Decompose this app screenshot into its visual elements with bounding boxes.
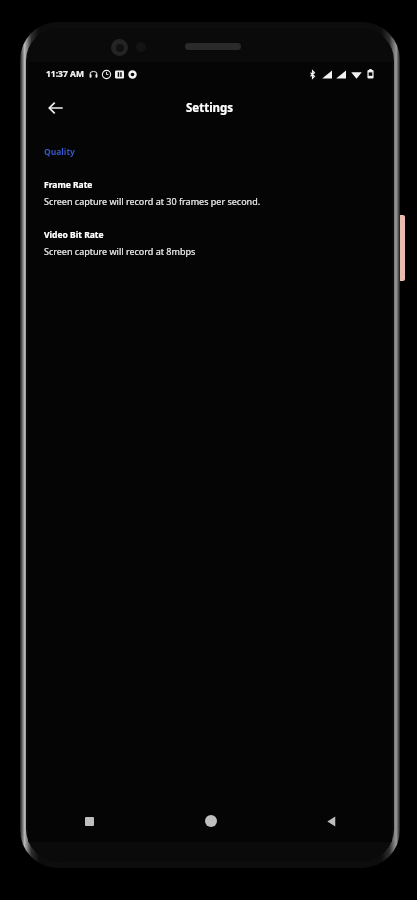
button[interactable]: Back (38, 90, 74, 126)
staticText: Quality (44, 146, 75, 158)
staticText: Settings (186, 100, 234, 116)
button[interactable]: Frame Rate (44, 179, 376, 207)
staticText: Screen capture will record at 8mbps (44, 245, 196, 257)
staticText: Screen capture will record at 30 frames … (44, 195, 261, 207)
button[interactable]: Back (271, 800, 392, 842)
button[interactable]: Recents (28, 800, 150, 842)
staticText: Video Bit Rate (44, 229, 104, 241)
button[interactable]: Home (150, 800, 271, 842)
staticText: Frame Rate (44, 179, 93, 191)
button[interactable]: Video Bit Rate (44, 229, 376, 257)
staticText: 11:37 AM (46, 68, 84, 80)
